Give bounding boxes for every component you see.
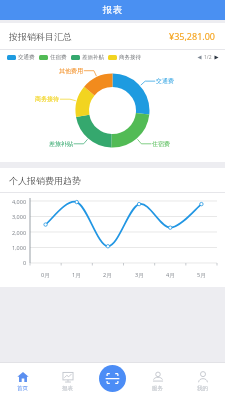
staticText: 我的 <box>197 385 208 392</box>
button[interactable]: 首页 <box>0 362 45 400</box>
staticText: 首页 <box>17 385 28 392</box>
staticText: ¥35,281.00 <box>169 30 216 42</box>
button[interactable]: 扫一扫 <box>99 365 126 392</box>
button[interactable]: 个人报销费用趋势 <box>0 168 225 192</box>
button[interactable]: 按报销科目汇总 <box>0 23 225 49</box>
staticText: 住宿费 <box>50 54 67 61</box>
button[interactable]: 报表 <box>45 362 90 400</box>
staticText: 商务接待 <box>119 54 141 61</box>
staticText: 5月 <box>197 271 206 279</box>
staticText: 报表 <box>62 385 73 392</box>
staticText: 差旅补贴 <box>82 54 104 61</box>
staticText: 差旅补贴 <box>49 140 73 148</box>
staticText: 个人报销费用趋势 <box>9 175 81 186</box>
staticText: 2,000 <box>12 229 27 236</box>
staticText: 0月 <box>41 271 50 279</box>
button[interactable]: 服务 <box>135 362 180 400</box>
staticText: 1,000 <box>12 244 27 251</box>
staticText: 按报销科目汇总 <box>9 31 72 42</box>
staticText: 商务接待 <box>35 95 59 103</box>
staticText: 住宿费 <box>152 140 176 148</box>
staticText: 其他费用 <box>59 67 83 75</box>
staticText: 1月 <box>72 271 81 279</box>
staticText: 0 <box>23 259 27 266</box>
staticText: 3月 <box>135 271 144 279</box>
staticText: 报表 <box>103 4 122 16</box>
button[interactable]: 上一页 下一页 <box>197 54 219 61</box>
staticText: 交通费 <box>18 54 35 61</box>
staticText: 4月 <box>166 271 175 279</box>
staticText: 服务 <box>152 385 163 392</box>
staticText: 4,000 <box>12 198 27 205</box>
button[interactable]: 我的 <box>180 362 225 400</box>
staticText: 交通费 <box>156 77 180 85</box>
staticText: 2月 <box>103 271 112 279</box>
staticText: 3,000 <box>12 213 27 220</box>
staticText: 1/2 <box>204 54 212 61</box>
